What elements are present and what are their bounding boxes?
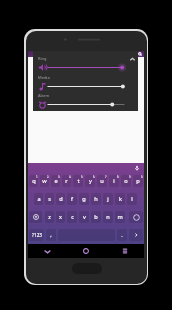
staticText: j (107, 195, 109, 203)
staticText: 2 (47, 175, 49, 179)
button[interactable]: t (73, 175, 83, 187)
button[interactable]: j (103, 193, 113, 205)
staticText: g (82, 195, 86, 203)
button[interactable]: d (56, 193, 65, 205)
staticText: 5 (81, 175, 83, 179)
other: Backspace (133, 214, 140, 221)
button[interactable]: Shift (29, 211, 42, 223)
staticText: t (77, 177, 80, 185)
staticText: 4 (69, 175, 71, 179)
button[interactable]: e (51, 175, 60, 187)
button[interactable]: Home (66, 244, 105, 258)
staticText: n (106, 213, 110, 221)
staticText: Alarm (38, 93, 50, 98)
staticText: 1 (36, 175, 38, 179)
staticText: k (119, 195, 122, 203)
button[interactable]: Ring (33, 56, 138, 74)
button[interactable]: h (91, 193, 101, 205)
button[interactable]: Recent apps (105, 244, 144, 258)
button[interactable]: w (40, 175, 49, 187)
staticText: . (121, 231, 123, 239)
other: Enter (133, 232, 139, 238)
button[interactable]: n (103, 211, 113, 223)
staticText: b (94, 213, 98, 221)
button[interactable]: r (62, 175, 71, 187)
staticText: q (32, 177, 36, 185)
staticText: z (48, 213, 51, 221)
staticText: w (42, 177, 47, 185)
button[interactable]: . (117, 229, 127, 241)
staticText: e (54, 177, 58, 185)
staticText: y (89, 177, 92, 185)
staticText: m (117, 213, 123, 221)
button[interactable]: Enter (129, 229, 143, 241)
staticText: o (124, 177, 128, 185)
staticText: s (48, 195, 51, 203)
button[interactable]: b (91, 211, 101, 223)
button[interactable]: Voice input (134, 165, 140, 171)
button[interactable]: y (85, 175, 95, 187)
staticText: f (71, 195, 73, 203)
staticText: Ring (38, 56, 47, 61)
staticText: 8 (117, 175, 119, 179)
button[interactable]: Expand (129, 56, 136, 63)
staticText: d (59, 195, 63, 203)
staticText: 3 (58, 175, 60, 179)
button[interactable]: Media (33, 75, 138, 93)
other: Search (138, 52, 142, 56)
button[interactable]: v (79, 211, 89, 223)
staticText: x (59, 213, 62, 221)
staticText: i (113, 177, 115, 185)
staticText: l (131, 195, 133, 203)
staticText: , (50, 231, 52, 239)
button[interactable]: , (46, 229, 56, 241)
staticText: p (136, 177, 140, 185)
staticText: 9 (129, 175, 131, 179)
button[interactable]: q (29, 175, 38, 187)
button[interactable]: a (34, 193, 43, 205)
button[interactable]: c (67, 211, 77, 223)
button[interactable]: u (97, 175, 107, 187)
button[interactable]: p (133, 175, 143, 187)
button[interactable]: z (45, 211, 54, 223)
staticText: a (37, 195, 41, 203)
button[interactable]: Alarm (33, 93, 138, 111)
button[interactable]: ?123 (29, 229, 44, 241)
staticText: Media (38, 75, 50, 80)
button[interactable]: x (56, 211, 65, 223)
staticText: 6 (93, 175, 95, 179)
button[interactable]: Backspace (129, 211, 143, 223)
button[interactable]: m (115, 211, 125, 223)
staticText: u (100, 177, 104, 185)
staticText: 7 (105, 175, 107, 179)
button[interactable]: s (45, 193, 54, 205)
button[interactable]: l (127, 193, 137, 205)
button[interactable]: o (121, 175, 131, 187)
button[interactable]: g (79, 193, 89, 205)
button[interactable]: Back (28, 244, 66, 258)
staticText: ?123 (32, 232, 42, 238)
button[interactable]: k (115, 193, 125, 205)
staticText: h (94, 195, 98, 203)
button[interactable]: i (109, 175, 119, 187)
staticText: r (65, 177, 68, 185)
button[interactable]: f (67, 193, 77, 205)
staticText: 0 (141, 175, 143, 179)
staticText: c (71, 213, 74, 221)
staticText: v (83, 213, 86, 221)
other: Shift (33, 214, 39, 220)
